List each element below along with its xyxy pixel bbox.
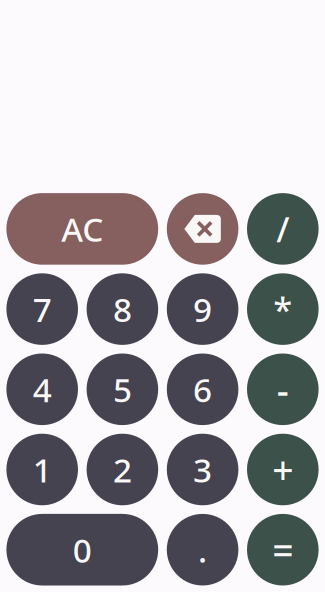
button[interactable]: Delete: [167, 193, 238, 265]
button[interactable]: 3: [167, 434, 238, 505]
staticText: 5: [113, 367, 132, 411]
button[interactable]: 2: [87, 434, 158, 505]
staticText: 3: [193, 447, 212, 492]
staticText: 6: [193, 367, 212, 411]
staticText: AC: [61, 207, 103, 251]
button[interactable]: .: [167, 514, 238, 585]
staticText: .: [198, 528, 207, 572]
staticText: 4: [33, 367, 52, 411]
button[interactable]: AC: [6, 193, 158, 265]
button[interactable]: +: [247, 434, 319, 505]
staticText: /: [276, 206, 289, 252]
button[interactable]: -: [247, 353, 319, 425]
button[interactable]: 8: [87, 273, 158, 345]
button[interactable]: /: [247, 193, 319, 265]
button[interactable]: 1: [6, 434, 78, 505]
button[interactable]: 9: [167, 273, 238, 345]
staticText: 2: [113, 447, 132, 492]
staticText: 0: [73, 528, 92, 572]
button[interactable]: *: [247, 273, 319, 345]
staticText: 7: [33, 287, 52, 331]
staticText: 9: [193, 287, 212, 331]
staticText: -: [277, 364, 289, 414]
button[interactable]: =: [247, 514, 319, 585]
button[interactable]: 0: [6, 514, 158, 585]
staticText: =: [272, 525, 293, 574]
button[interactable]: 6: [167, 353, 238, 425]
staticText: +: [272, 445, 293, 494]
staticText: *: [273, 286, 292, 332]
staticText: 1: [33, 447, 52, 492]
button[interactable]: 7: [6, 273, 78, 345]
button[interactable]: 4: [6, 353, 78, 425]
staticText: 8: [113, 287, 132, 331]
button[interactable]: 5: [87, 353, 158, 425]
